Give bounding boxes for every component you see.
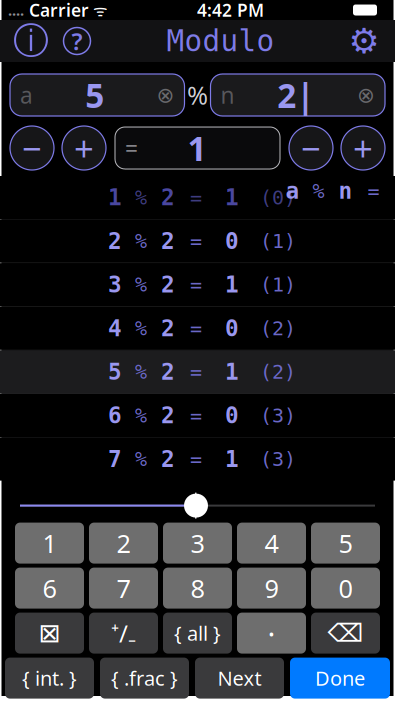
staticText: % <box>135 230 147 252</box>
staticText: ⊗ <box>357 83 375 107</box>
button[interactable]: 9 <box>237 568 306 609</box>
staticText: % <box>312 180 324 202</box>
staticText: ⊠ <box>38 618 60 648</box>
button[interactable]: 3 <box>163 523 232 564</box>
staticText: a <box>285 178 299 204</box>
staticText: % <box>187 78 208 112</box>
staticText: 1 <box>225 185 239 210</box>
button[interactable]: 7 <box>0 438 395 481</box>
staticText: % <box>135 404 147 427</box>
button[interactable]: 2 <box>89 523 158 564</box>
button[interactable]: 1 <box>0 176 395 219</box>
button[interactable]: ⌫ <box>311 613 380 654</box>
staticText: 5 <box>85 73 104 117</box>
button[interactable]: { int. } <box>5 658 94 699</box>
staticText: Modulo <box>166 24 274 58</box>
staticText: { all } <box>174 620 221 646</box>
staticText: 1 <box>42 526 56 560</box>
button[interactable]: Decrease <box>289 126 333 170</box>
button[interactable]: Help <box>54 21 100 61</box>
staticText: 4 <box>264 526 278 560</box>
button[interactable]: Next <box>195 658 284 699</box>
staticText: ᯤ <box>89 0 108 21</box>
button[interactable]: ⊠ <box>15 613 84 654</box>
staticText: 0 <box>338 571 352 605</box>
button[interactable]: 1 <box>15 523 84 564</box>
button[interactable]: Decrease <box>10 126 54 170</box>
staticText: 5 <box>108 359 122 385</box>
button[interactable]: ⁺/₋ <box>89 613 158 654</box>
button[interactable]: 5 <box>311 523 380 564</box>
staticText: + <box>353 125 373 171</box>
button[interactable]: 5 <box>0 350 395 393</box>
button[interactable]: Info <box>8 21 54 61</box>
staticText: = <box>190 230 202 252</box>
staticText: 2 <box>161 446 175 472</box>
staticText: 8 <box>190 571 204 605</box>
staticText: (1) <box>260 230 296 252</box>
staticText: 1 <box>225 446 239 472</box>
staticText: 2 <box>108 228 122 254</box>
staticText: 4 <box>108 315 122 341</box>
button[interactable]: 8 <box>163 568 232 609</box>
staticText: 3 <box>108 272 122 297</box>
staticText: % <box>135 361 147 383</box>
staticText: 4:42 PM <box>197 0 264 21</box>
staticText: ⓘ <box>13 19 49 63</box>
staticText: 9 <box>264 571 278 605</box>
staticText: = <box>190 273 202 296</box>
button[interactable]: n <box>210 74 385 116</box>
staticText: − <box>301 125 321 171</box>
staticText: 2 <box>161 228 175 254</box>
staticText: Next <box>217 665 261 691</box>
staticText: 2| <box>277 73 314 117</box>
staticText: % <box>135 448 147 470</box>
staticText: = <box>190 317 202 340</box>
button[interactable]: { all } <box>163 613 232 654</box>
staticText: = <box>190 186 202 209</box>
staticText: % <box>135 317 147 340</box>
button[interactable]: 6 <box>0 394 395 437</box>
button[interactable]: · <box>237 613 306 654</box>
button[interactable]: 6 <box>15 568 84 609</box>
staticText: (2) <box>260 317 296 340</box>
button[interactable]: 4 <box>237 523 306 564</box>
staticText: = <box>125 133 138 163</box>
staticText: = <box>367 180 379 202</box>
staticText: 2 <box>116 526 130 560</box>
staticText: = <box>190 404 202 427</box>
button[interactable]: Increase <box>341 126 385 170</box>
staticText: 6 <box>108 403 122 428</box>
staticText: 5 <box>338 526 352 560</box>
staticText: 1 <box>187 126 206 170</box>
staticText: ⁺/₋ <box>111 617 136 649</box>
button[interactable]: 4 <box>0 307 395 350</box>
staticText: − <box>22 125 42 171</box>
staticText: (0) <box>260 186 296 209</box>
staticText: { int. } <box>22 665 77 691</box>
staticText: 0 <box>225 315 239 341</box>
button[interactable]: Done <box>290 658 390 699</box>
staticText: a <box>20 80 33 110</box>
button[interactable]: { .frac } <box>100 658 189 699</box>
button[interactable]: Settings <box>341 21 387 61</box>
staticText: 1 <box>108 185 122 210</box>
staticText: .... <box>8 0 24 20</box>
button[interactable]: 3 <box>0 263 395 306</box>
button[interactable]: 0 <box>311 568 380 609</box>
staticText: ? <box>71 25 82 57</box>
button[interactable]: Increase <box>62 126 106 170</box>
staticText: 0 <box>225 403 239 428</box>
staticText: 6 <box>42 571 56 605</box>
staticText: 2 <box>161 272 175 297</box>
staticText: 7 <box>116 571 130 605</box>
button[interactable]: 7 <box>89 568 158 609</box>
button[interactable]: a <box>10 74 184 116</box>
staticText: (3) <box>260 448 296 470</box>
staticText: ⚙ <box>348 21 379 61</box>
button[interactable]: 2 <box>0 220 395 263</box>
staticText: 1 <box>225 359 239 385</box>
staticText: n <box>338 178 352 204</box>
staticText: 1 <box>225 272 239 297</box>
staticText: 2 <box>161 315 175 341</box>
